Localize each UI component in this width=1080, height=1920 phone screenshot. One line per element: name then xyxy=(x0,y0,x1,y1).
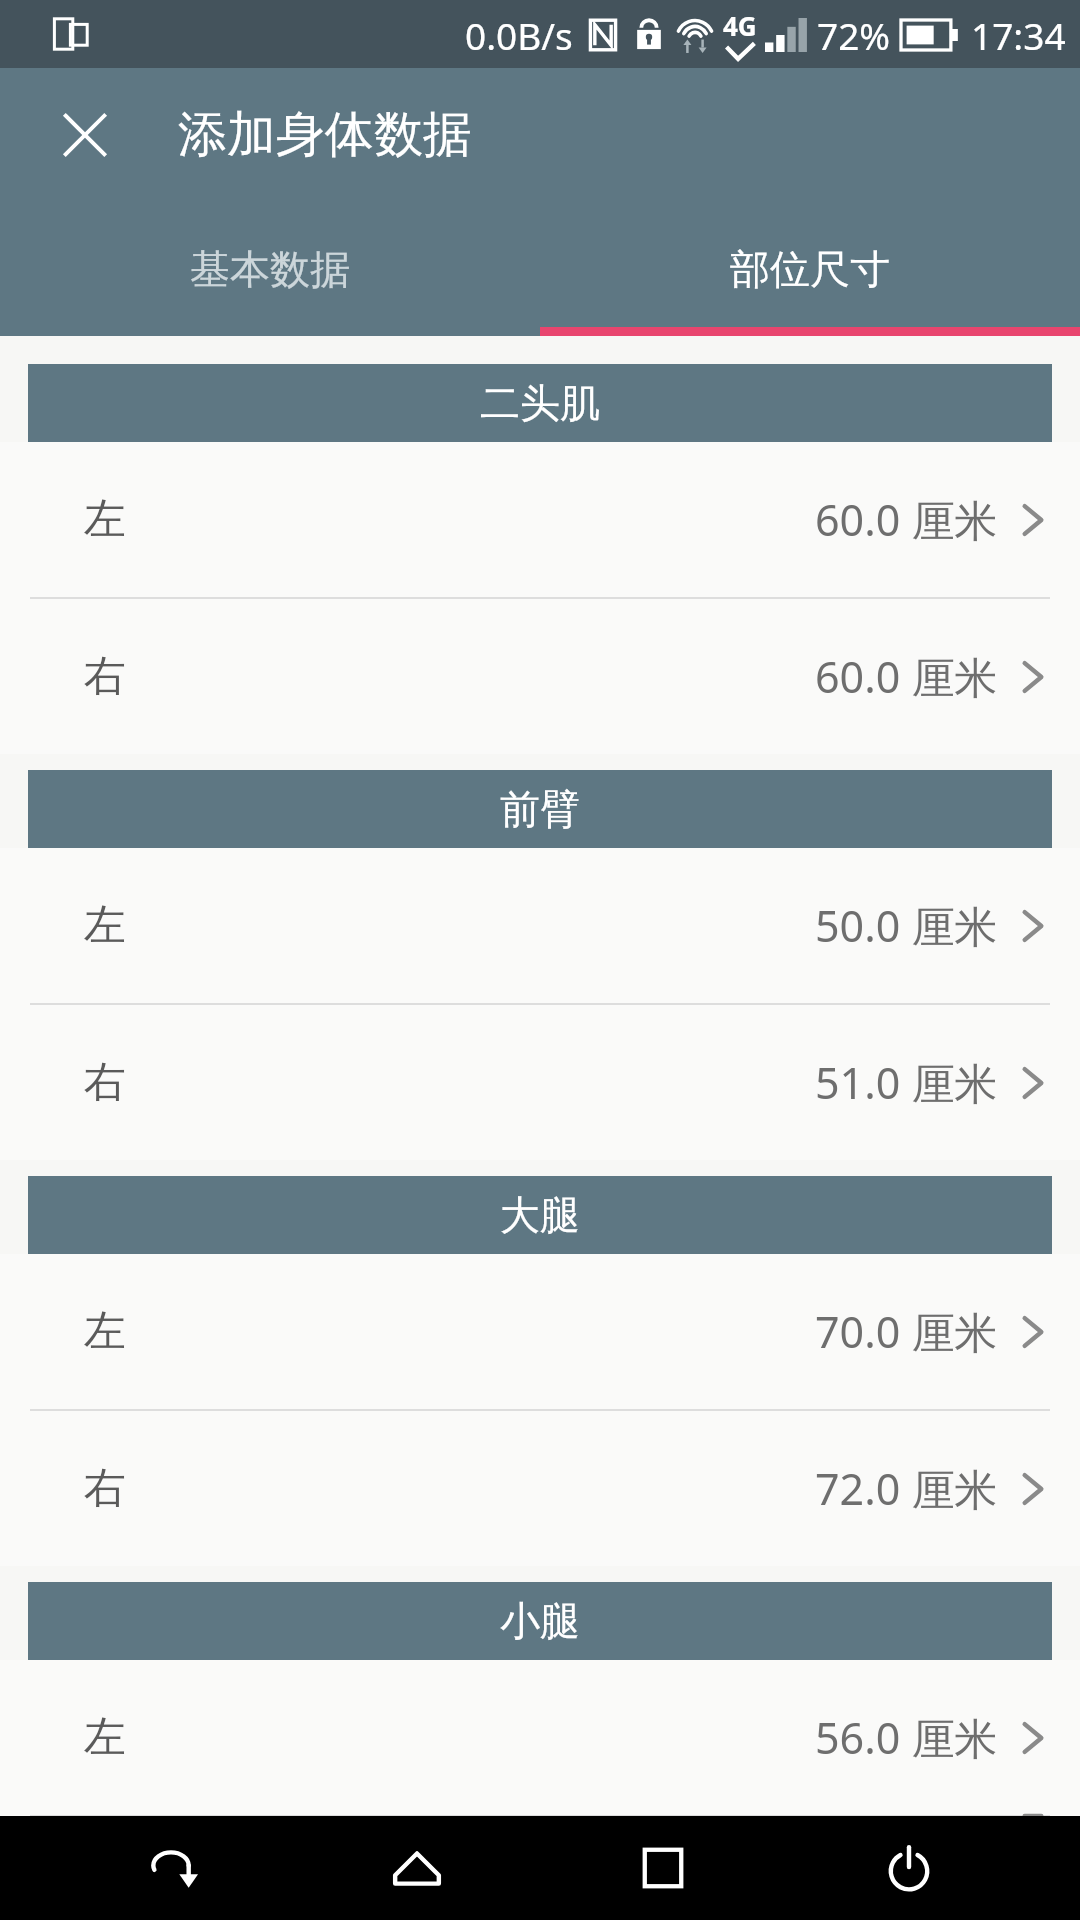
button[interactable]: 左 xyxy=(0,442,1080,597)
staticText: 右 xyxy=(84,650,126,703)
staticText: 17:34 xyxy=(971,10,1066,60)
staticText: 70.0 厘米 xyxy=(815,1302,998,1361)
staticText: 大腿 xyxy=(500,1190,580,1240)
staticText: 0.0B/s xyxy=(465,10,573,60)
staticText: 添加身体数据 xyxy=(178,104,472,166)
staticText: 60.0 厘米 xyxy=(815,490,998,549)
button[interactable]: 右 xyxy=(0,1005,1080,1160)
button[interactable]: 部位尺寸 xyxy=(540,202,1080,336)
staticText: 72% xyxy=(817,10,891,60)
staticText: 二头肌 xyxy=(480,378,600,428)
staticText: 左 xyxy=(84,493,126,546)
button[interactable]: Power xyxy=(834,1816,984,1920)
staticText: 56.0 厘米 xyxy=(815,1708,998,1767)
button[interactable]: Home xyxy=(342,1816,492,1920)
button[interactable]: Recents xyxy=(588,1816,738,1920)
staticText: 小腿 xyxy=(500,1596,580,1646)
button[interactable]: 右 xyxy=(0,1411,1080,1566)
button[interactable]: 右 xyxy=(0,599,1080,754)
staticText: 右 xyxy=(84,1056,126,1109)
staticText: 左 xyxy=(84,899,126,952)
button[interactable]: Close xyxy=(50,100,120,170)
staticText: 左 xyxy=(84,1711,126,1764)
staticText: 部位尺寸 xyxy=(730,244,890,294)
staticText: 60.0 厘米 xyxy=(815,647,998,706)
button[interactable]: 左 xyxy=(0,1660,1080,1815)
staticText: 51.0 厘米 xyxy=(815,1053,998,1112)
button[interactable]: 基本数据 xyxy=(0,202,540,336)
button[interactable]: 左 xyxy=(0,1254,1080,1409)
button[interactable]: Back xyxy=(96,1816,246,1920)
staticText: 72.0 厘米 xyxy=(815,1459,998,1518)
staticText: 前臂 xyxy=(500,784,580,834)
button[interactable]: 左 xyxy=(0,848,1080,1003)
staticText: 右 xyxy=(84,1462,126,1515)
staticText: 4G xyxy=(723,8,757,43)
staticText: 左 xyxy=(84,1305,126,1358)
staticText: 50.0 厘米 xyxy=(815,896,998,955)
staticText: 基本数据 xyxy=(190,244,350,294)
